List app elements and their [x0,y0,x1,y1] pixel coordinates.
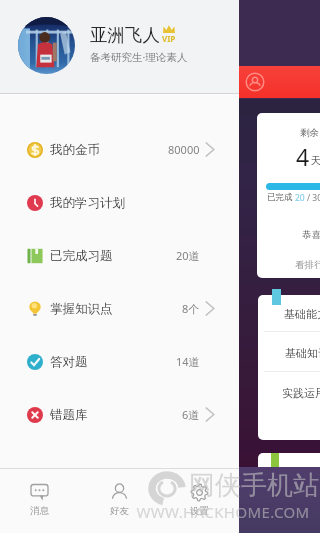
staticText: 6道 [182,407,200,422]
staticText: 备考研究生·理论素人 [90,50,188,64]
staticText: VIP [162,33,176,44]
button[interactable]: 掌握知识点 [0,282,239,335]
staticText: 基础知识 [285,346,320,360]
button[interactable]: 好友 [79,469,159,533]
staticText: 错题库 [50,407,88,423]
staticText: 好友 [110,505,129,517]
staticText: 看排行 [295,259,320,271]
staticText: 我的金币 [50,142,100,158]
staticText: 答对题 [50,354,88,370]
staticText: 网侠手机站 [189,469,319,502]
staticText: / 30 [307,192,320,204]
staticText: 20 [295,192,305,204]
button[interactable]: Account [245,72,265,92]
staticText: 恭喜您 [302,229,320,241]
button[interactable]: 错题库 [0,388,239,441]
button[interactable]: 答对题 [0,335,239,388]
button[interactable]: 基础能力 [258,295,320,440]
staticText: 14道 [176,354,200,369]
staticText: 掌握知识点 [50,301,113,317]
button[interactable]: 已完成习题 [0,229,239,282]
button[interactable]: 我的金币 [0,123,239,176]
staticText: 已完成 [267,192,293,203]
staticText: 80000 [168,142,200,157]
staticText: 亚洲飞人 [90,24,160,46]
staticText: 实践运用 [282,386,320,400]
staticText: 基础能力 [284,307,320,321]
button[interactable]: 我的学习计划 [0,176,239,229]
staticText: 天 [311,154,320,167]
button[interactable]: 设置 [159,469,239,533]
staticText: 20道 [176,248,200,263]
button[interactable]: 消息 [0,469,79,533]
button[interactable]: 剩余 [257,113,320,278]
staticText: 我的学习计划 [50,195,125,211]
button[interactable]: 亚洲飞人 [0,0,239,94]
staticText: 设置 [190,505,209,517]
staticText: 消息 [30,505,49,517]
staticText: 剩余 [300,127,319,139]
staticText: 8个 [182,301,200,316]
staticText: WWW.HACKHOME.COM [136,502,310,522]
staticText: 已完成习题 [50,248,113,264]
staticText: 4 [296,141,310,172]
